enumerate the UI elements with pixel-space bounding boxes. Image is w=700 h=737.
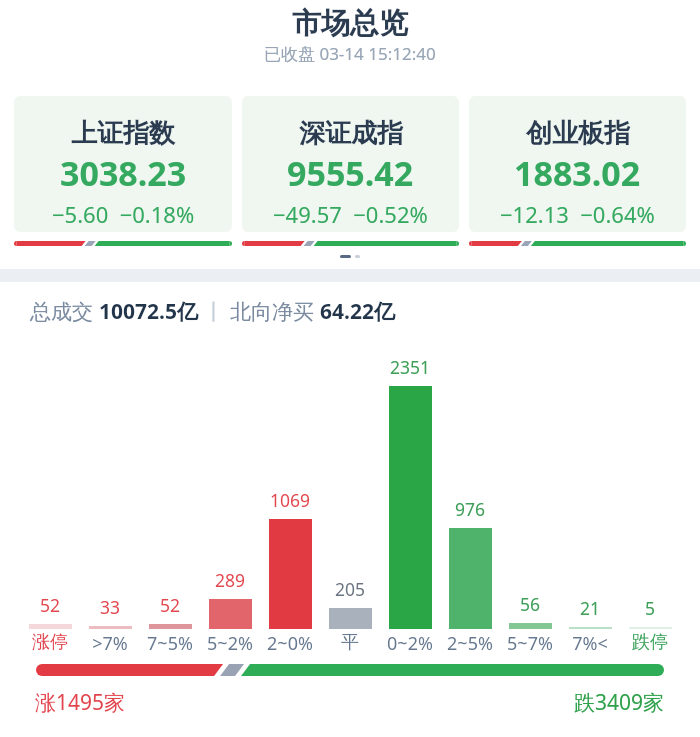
staticText: 北向净买 <box>230 297 320 326</box>
staticText: 涨1495家 <box>35 688 126 717</box>
staticText: 丨 <box>198 297 230 326</box>
staticText: 52 <box>160 593 181 617</box>
button[interactable]: 深证成指 <box>242 96 459 232</box>
staticText: 市场总览 <box>292 5 408 42</box>
staticText: 7%< <box>560 631 620 656</box>
staticText: 深证成指 <box>299 117 403 150</box>
staticText: >7% <box>80 631 140 656</box>
button[interactable]: 总成交 <box>30 297 395 326</box>
staticText: 976 <box>455 497 486 521</box>
staticText: 205 <box>335 577 366 601</box>
staticText: 9555.42 <box>287 150 414 196</box>
staticText: 64.22亿 <box>320 297 395 326</box>
button[interactable]: 创业板指 <box>469 96 686 232</box>
staticText: −12.13 −0.64% <box>500 199 655 229</box>
staticText: 2~5% <box>440 631 500 656</box>
staticText: 5~7% <box>500 631 560 656</box>
staticText: 2~0% <box>260 631 320 656</box>
staticText: 总成交 <box>30 297 99 326</box>
staticText: 289 <box>215 568 246 592</box>
staticText: 创业板指 <box>526 117 630 150</box>
staticText: −49.57 −0.52% <box>273 199 428 229</box>
staticText: 跌3409家 <box>574 688 665 717</box>
staticText: 0~2% <box>380 631 440 656</box>
staticText: 52 <box>40 593 61 617</box>
staticText: 上证指数 <box>71 117 175 150</box>
staticText: 10072.5亿 <box>99 297 198 326</box>
staticText: −5.60 −0.18% <box>52 199 195 229</box>
button[interactable]: 上证指数 <box>14 96 232 232</box>
staticText: 1883.02 <box>514 150 641 196</box>
staticText: 5~2% <box>200 631 260 656</box>
staticText: 33 <box>100 595 121 619</box>
staticText: 5 <box>645 596 656 620</box>
staticText: 已收盘 03-14 15:12:40 <box>264 42 436 65</box>
staticText: 7~5% <box>140 631 200 656</box>
staticText: 跌停 <box>620 631 680 654</box>
staticText: 3038.23 <box>60 150 187 196</box>
staticText: 平 <box>320 631 380 654</box>
staticText: 涨停 <box>20 631 80 654</box>
staticText: 56 <box>520 592 541 616</box>
staticText: 1069 <box>270 488 311 512</box>
staticText: 21 <box>580 596 601 620</box>
staticText: 2351 <box>390 355 431 379</box>
